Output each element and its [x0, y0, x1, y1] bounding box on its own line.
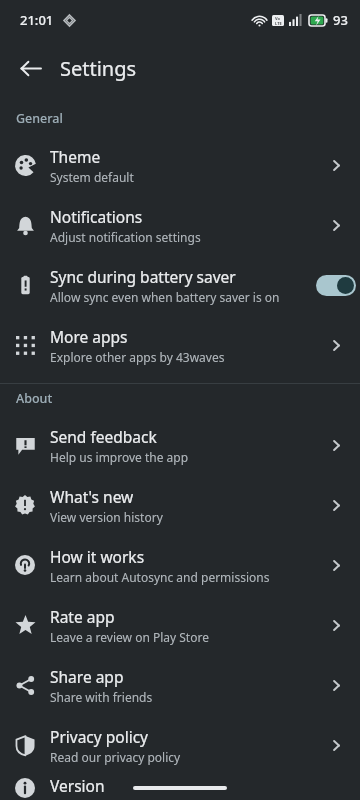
staticText: Notifications	[50, 206, 143, 227]
button[interactable]: Privacy policy	[0, 715, 360, 775]
button[interactable]: Sync during battery saver	[0, 255, 360, 315]
staticText: Send feedback	[50, 426, 157, 447]
staticText: Adjust notification settings	[50, 229, 201, 245]
staticText: 21:01	[20, 11, 54, 29]
staticText: Version	[50, 775, 105, 796]
staticText: Read our privacy policy	[50, 749, 181, 765]
staticText: Sync during battery saver	[50, 266, 236, 287]
staticText: Help us improve the app	[50, 449, 189, 465]
button[interactable]: How it works	[0, 535, 360, 595]
button[interactable]: More apps	[0, 315, 360, 375]
button[interactable]: Rate app	[0, 595, 360, 655]
staticText: Learn about Autosync and permissions	[50, 569, 270, 585]
staticText: More apps	[50, 326, 128, 347]
staticText: Share with friends	[50, 689, 153, 705]
staticText: Allow sync even when battery saver is on	[50, 289, 280, 305]
staticText: System default	[50, 169, 134, 185]
staticText: Share app	[50, 666, 124, 687]
button[interactable]: Back	[8, 46, 52, 90]
button[interactable]: Notifications	[0, 195, 360, 255]
staticText: How it works	[50, 546, 145, 567]
staticText: 93	[333, 11, 348, 29]
staticText: Privacy policy	[50, 726, 148, 747]
staticText: Leave a review on Play Store	[50, 629, 209, 645]
staticText: Theme	[50, 146, 101, 167]
staticText: Rate app	[50, 606, 115, 627]
staticText: What's new	[50, 486, 134, 507]
button[interactable]: Send feedback	[0, 415, 360, 475]
staticText: Explore other apps by 43waves	[50, 349, 225, 365]
staticText: About	[16, 390, 53, 407]
staticText: View version history	[50, 509, 163, 525]
staticText: Vo LTE	[275, 16, 282, 26]
button[interactable]: Share app	[0, 655, 360, 715]
staticText: Settings	[60, 55, 137, 82]
button[interactable]: Theme	[0, 135, 360, 195]
button[interactable]: Version	[0, 775, 360, 800]
button[interactable]: Sync during battery saver toggle	[316, 275, 356, 296]
staticText: General	[16, 110, 63, 127]
button[interactable]: What's new	[0, 475, 360, 535]
